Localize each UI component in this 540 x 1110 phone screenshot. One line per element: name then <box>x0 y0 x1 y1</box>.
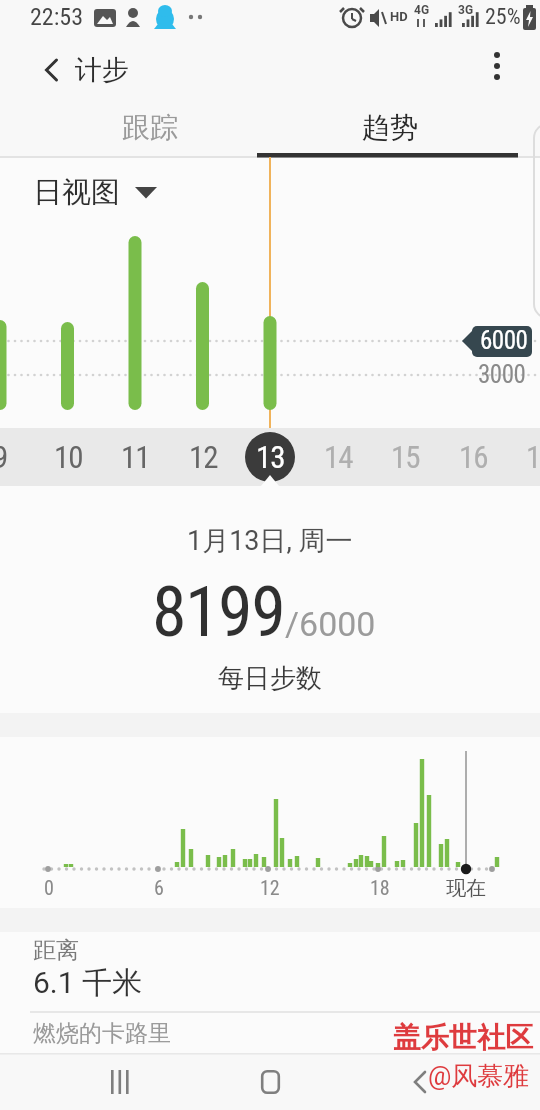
staticText: 趋势 <box>362 110 418 145</box>
button[interactable] <box>70 1053 170 1110</box>
staticText: 计步 <box>75 53 129 87</box>
staticText: 6 <box>154 876 164 899</box>
button[interactable]: 14 <box>308 428 368 486</box>
staticText: 25% <box>485 4 521 30</box>
staticText: 盖乐世社区 <box>393 1020 533 1055</box>
staticText: 跟踪 <box>122 110 178 145</box>
button[interactable]: 11 <box>105 428 165 486</box>
staticText: 16 <box>459 439 488 475</box>
staticText: 15 <box>391 439 420 475</box>
staticText: 9 <box>0 439 8 475</box>
button[interactable]: 17 <box>510 428 540 486</box>
staticText: 13 <box>256 439 285 475</box>
staticText: 8199 <box>152 571 285 653</box>
button[interactable]: 趋势 <box>270 96 510 158</box>
button[interactable]: 燃烧的卡路里 <box>0 1013 540 1053</box>
staticText: 12 <box>260 876 280 899</box>
staticText: 现在 <box>446 876 486 901</box>
staticText: 距离 <box>33 936 79 965</box>
staticText: 每日步数 <box>218 662 322 695</box>
button[interactable]: 13 <box>245 432 295 482</box>
staticText: 6.1 千米 <box>33 964 143 1002</box>
button[interactable]: 跟踪 <box>30 96 270 158</box>
staticText: 3G <box>458 3 474 17</box>
button[interactable]: 12 <box>173 428 233 486</box>
staticText: 4G <box>414 3 430 17</box>
staticText: 18 <box>370 876 390 899</box>
staticText: /6000 <box>285 604 376 644</box>
button[interactable]: 10 <box>38 428 98 486</box>
staticText: 17 <box>526 439 540 475</box>
staticText: 燃烧的卡路里 <box>33 1019 171 1048</box>
staticText: HD <box>390 9 408 24</box>
staticText: 10 <box>54 439 83 475</box>
staticText: 日视图 <box>33 174 120 211</box>
button[interactable]: 15 <box>375 428 435 486</box>
button[interactable]: 9 <box>0 428 30 486</box>
button[interactable] <box>29 48 73 92</box>
button[interactable]: 16 <box>443 428 503 486</box>
staticText: 22:53 <box>30 3 83 31</box>
staticText: @风慕雅 <box>428 1060 530 1093</box>
staticText: 14 <box>324 439 353 475</box>
staticText: 0 <box>44 876 54 899</box>
staticText: 3000 <box>478 360 526 389</box>
staticText: 12 <box>189 439 218 475</box>
staticText: 11 <box>121 439 150 475</box>
staticText: 6000 <box>480 326 528 355</box>
button[interactable]: 日视图 <box>33 174 157 211</box>
button[interactable] <box>220 1053 320 1110</box>
staticText: 1月13日, 周一 <box>187 524 353 558</box>
button[interactable] <box>370 1053 470 1110</box>
button[interactable] <box>472 36 522 96</box>
button[interactable]: 距离 <box>0 932 540 1012</box>
